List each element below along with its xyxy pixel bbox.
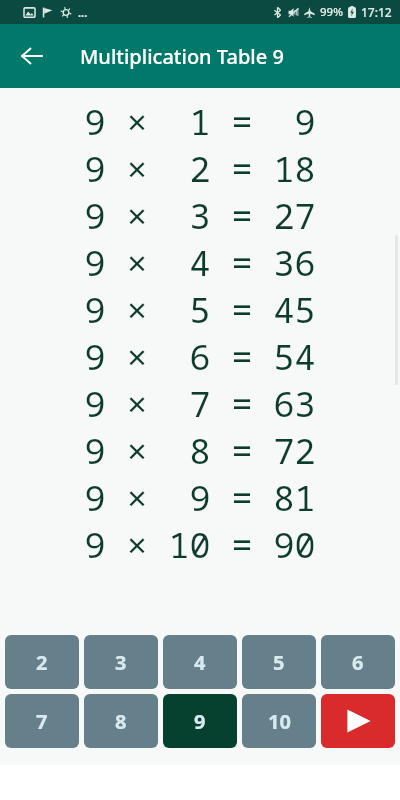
staticText: 9 × 7 = 63: [84, 380, 316, 427]
staticText: 3: [115, 649, 127, 676]
staticText: ...: [78, 5, 88, 20]
button[interactable]: 6: [321, 635, 395, 689]
staticText: 7: [36, 708, 48, 735]
staticText: 9 × 3 = 27: [84, 192, 316, 239]
staticText: 9 × 10 = 90: [84, 521, 316, 568]
staticText: 17:12: [361, 4, 392, 20]
staticText: 9 × 2 = 18: [84, 145, 316, 192]
staticText: 6: [352, 649, 364, 676]
button[interactable]: Play: [321, 694, 395, 748]
staticText: 10: [268, 708, 291, 735]
button[interactable]: Back: [8, 32, 56, 80]
staticText: 9 × 9 = 81: [84, 474, 316, 521]
button[interactable]: 2: [5, 635, 79, 689]
button[interactable]: 8: [84, 694, 158, 748]
staticText: 8: [115, 708, 127, 735]
staticText: 4: [194, 649, 206, 676]
staticText: 5: [273, 649, 285, 676]
staticText: 9 × 4 = 36: [84, 239, 316, 286]
button[interactable]: 3: [84, 635, 158, 689]
staticText: 99%: [320, 4, 343, 20]
staticText: 2: [36, 649, 48, 676]
staticText: 9: [194, 708, 206, 735]
staticText: Multiplication Table 9: [80, 43, 284, 70]
button[interactable]: 7: [5, 694, 79, 748]
button[interactable]: 5: [242, 635, 316, 689]
staticText: 9 × 1 = 9: [84, 98, 316, 145]
staticText: 9 × 6 = 54: [84, 333, 316, 380]
staticText: 9 × 5 = 45: [84, 286, 316, 333]
staticText: 9 × 8 = 72: [84, 427, 316, 474]
button[interactable]: 4: [163, 635, 237, 689]
button[interactable]: 10: [242, 694, 316, 748]
button[interactable]: 9: [163, 694, 237, 748]
